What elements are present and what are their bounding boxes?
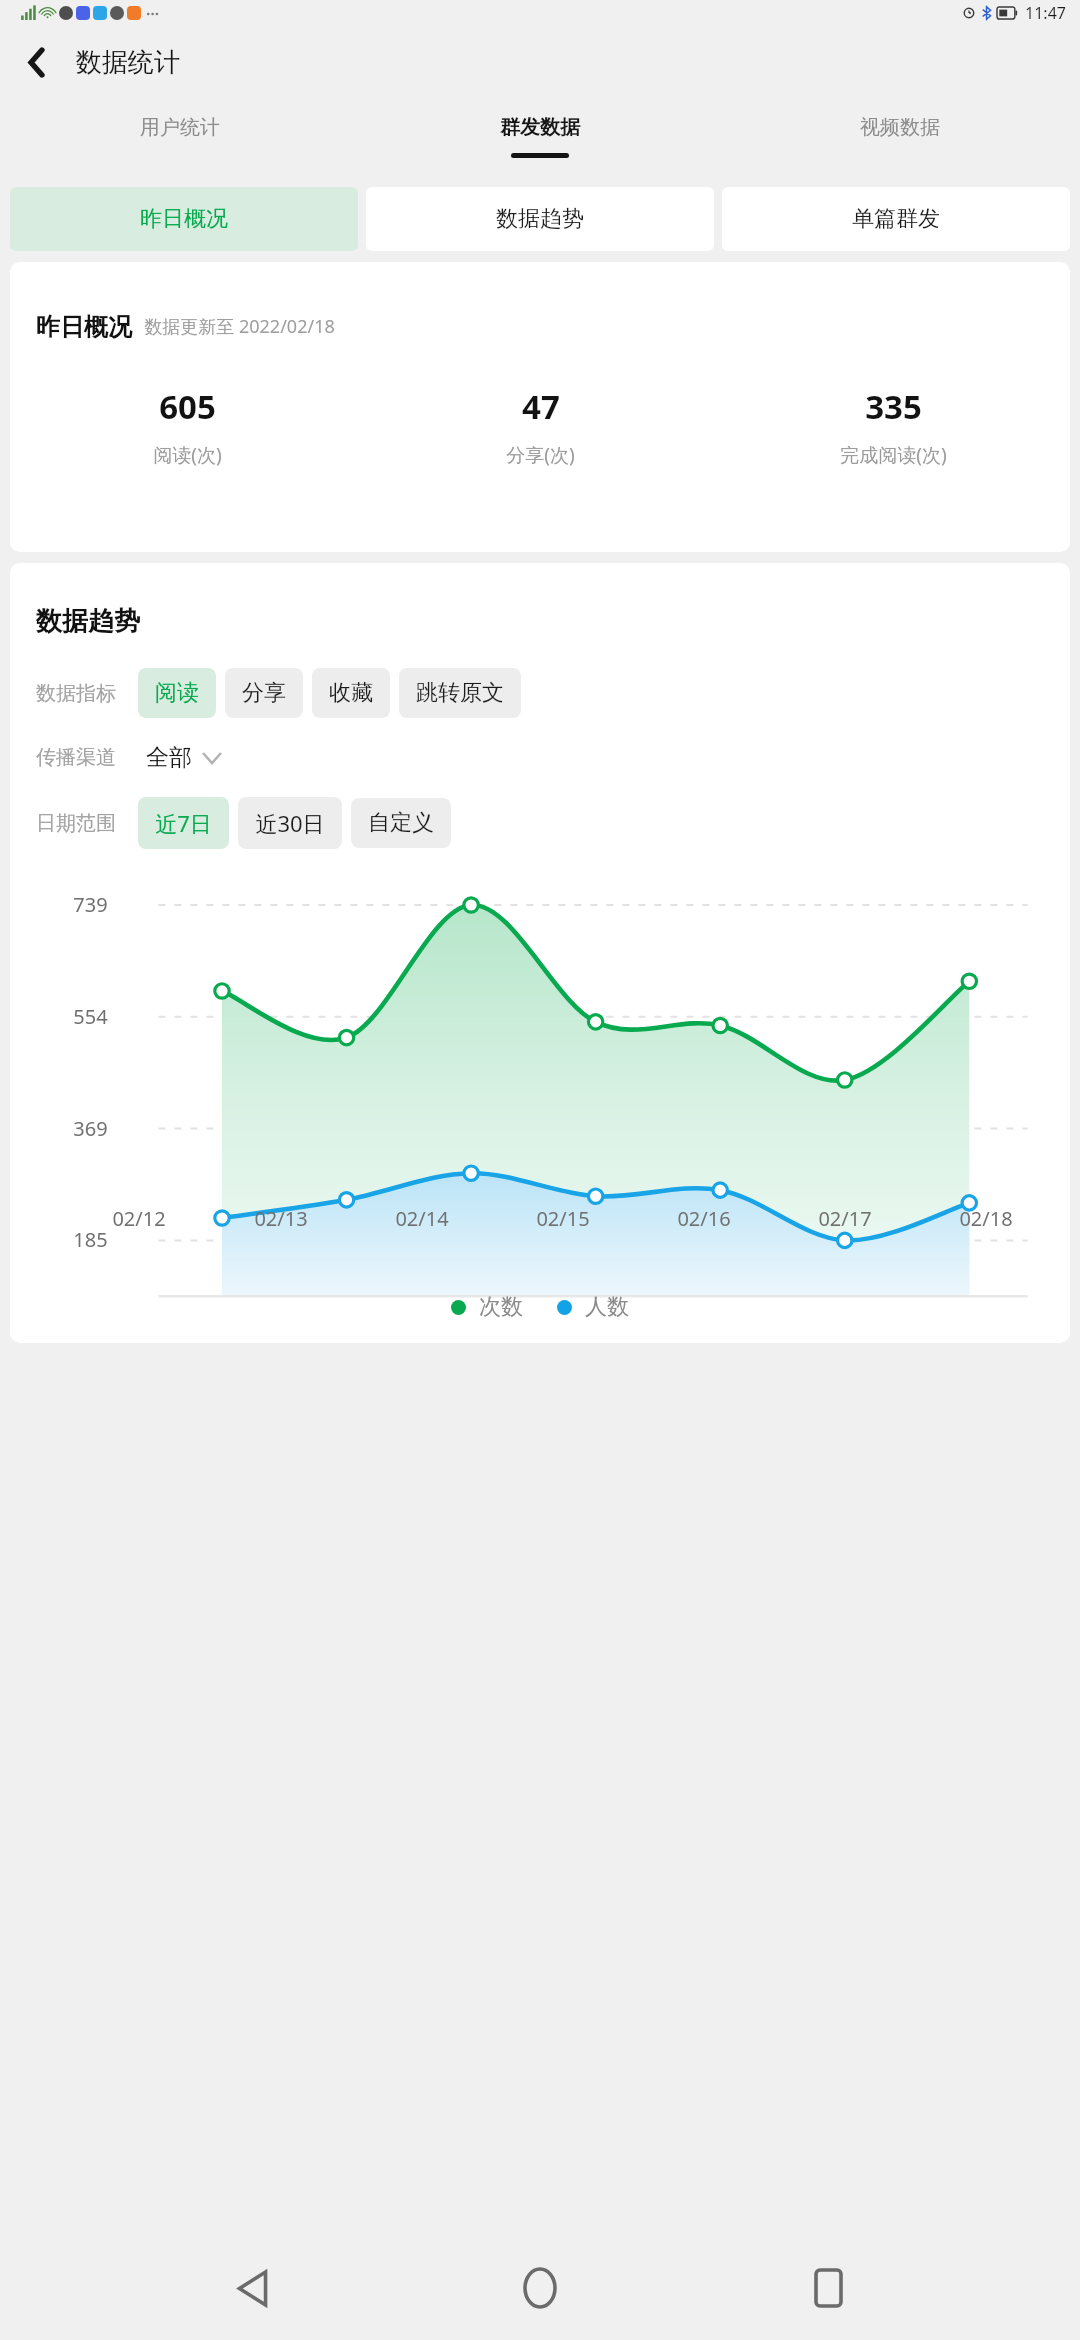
staticText: 分享(次) (506, 442, 575, 468)
staticText: 数据趋势 (36, 605, 140, 638)
staticText: 47 (522, 384, 560, 429)
staticText: 369 (73, 1115, 108, 1142)
button[interactable]: 单篇群发 (722, 187, 1070, 251)
staticText: 数据指标 (36, 681, 116, 706)
staticText: 数据统计 (76, 46, 180, 79)
button[interactable]: Recent apps (792, 2252, 864, 2324)
button[interactable]: 近7日 (138, 797, 229, 849)
staticText: 近7日 (155, 808, 212, 838)
staticText: 昨日概况 (36, 312, 132, 342)
button[interactable]: 群发数据 (360, 99, 720, 179)
button[interactable]: 335 (717, 384, 1070, 468)
staticText: 02/14 (395, 1205, 449, 1232)
staticText: 次数 (479, 1293, 523, 1321)
button[interactable]: 近30日 (238, 797, 342, 849)
button[interactable]: 605 (10, 384, 364, 468)
button[interactable]: 视频数据 (720, 99, 1080, 179)
staticText: 群发数据 (500, 115, 580, 140)
staticText: 02/17 (818, 1205, 872, 1232)
staticText: 02/15 (536, 1205, 590, 1232)
staticText: 数据趋势 (496, 205, 584, 233)
button[interactable]: 全部 (138, 732, 229, 783)
staticText: 335 (865, 384, 922, 429)
staticText: 185 (73, 1226, 108, 1253)
staticText: 近30日 (255, 808, 325, 838)
staticText: 阅读(次) (153, 442, 222, 468)
button[interactable]: 分享 (225, 668, 303, 718)
staticText: 用户统计 (140, 115, 220, 140)
button[interactable]: 自定义 (351, 798, 451, 848)
staticText: 收藏 (329, 679, 373, 707)
button[interactable]: 47 (364, 384, 717, 468)
staticText: 视频数据 (860, 115, 940, 140)
staticText: 02/16 (677, 1205, 731, 1232)
button[interactable]: 用户统计 (0, 99, 360, 179)
staticText: 数据更新至 2022/02/18 (144, 314, 335, 339)
staticText: 完成阅读(次) (840, 442, 947, 468)
button[interactable]: 收藏 (312, 668, 390, 718)
staticText: 554 (73, 1003, 108, 1030)
staticText: 传播渠道 (36, 745, 116, 770)
staticText: 11:47 (1025, 2, 1066, 24)
button[interactable]: Back (216, 2252, 288, 2324)
button[interactable]: Home (504, 2252, 576, 2324)
staticText: 02/12 (112, 1205, 166, 1232)
staticText: 605 (159, 384, 216, 429)
staticText: 739 (73, 891, 108, 918)
staticText: 人数 (585, 1293, 629, 1321)
staticText: 分享 (242, 679, 286, 707)
button[interactable]: 人数 (557, 1293, 629, 1321)
button[interactable]: 次数 (451, 1293, 523, 1321)
button[interactable]: 阅读 (138, 668, 216, 718)
button[interactable]: Back (14, 40, 58, 84)
staticText: 02/13 (254, 1205, 308, 1232)
button[interactable]: 数据趋势 (366, 187, 714, 251)
staticText: 全部 (146, 743, 192, 772)
staticText: 02/18 (959, 1205, 1013, 1232)
staticText: 跳转原文 (416, 679, 504, 707)
staticText: 昨日概况 (140, 205, 228, 233)
staticText: 阅读 (155, 679, 199, 707)
staticText: 单篇群发 (852, 205, 940, 233)
staticText: 日期范围 (36, 811, 116, 836)
staticText: 自定义 (368, 809, 434, 837)
button[interactable]: 跳转原文 (399, 668, 521, 718)
button[interactable]: 昨日概况 (10, 187, 358, 251)
